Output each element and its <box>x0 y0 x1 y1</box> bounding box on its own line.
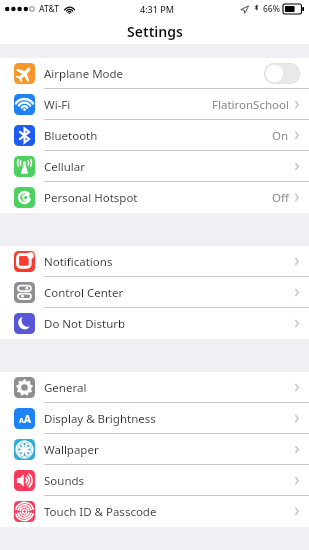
staticText: Notifications <box>44 254 113 270</box>
staticText: Settings <box>127 22 183 41</box>
staticText: AT&T <box>39 3 60 15</box>
staticText: On <box>272 128 289 144</box>
button[interactable]: Do Not Disturb <box>0 308 309 339</box>
staticText: Control Center <box>44 285 124 301</box>
staticText: Personal Hotspot <box>44 190 138 206</box>
staticText: Wi-Fi <box>44 97 71 113</box>
button[interactable]: Airplane Mode toggle <box>264 63 300 84</box>
staticText: Bluetooth <box>44 128 98 144</box>
staticText: 66% <box>263 3 280 15</box>
staticText: 4:31 PM <box>140 3 174 15</box>
staticText: Airplane Mode <box>44 66 124 82</box>
staticText: Off <box>272 190 289 206</box>
staticText: General <box>44 380 87 396</box>
button[interactable]: Bluetooth <box>0 120 309 151</box>
staticText: Wallpaper <box>44 442 99 458</box>
staticText: Do Not Disturb <box>44 316 126 332</box>
button[interactable]: Cellular <box>0 151 309 182</box>
button[interactable]: Personal Hotspot <box>0 182 309 213</box>
staticText: Cellular <box>44 159 85 175</box>
staticText: FlatironSchool <box>212 97 289 113</box>
staticText: A <box>19 416 24 426</box>
button[interactable]: Control Center <box>0 277 309 308</box>
staticText: A <box>24 412 31 426</box>
button[interactable]: A <box>0 403 309 434</box>
button[interactable]: Sounds <box>0 465 309 496</box>
button[interactable]: Airplane Mode <box>0 58 309 89</box>
button[interactable]: Wallpaper <box>0 434 309 465</box>
staticText: Sounds <box>44 473 85 489</box>
staticText: Touch ID & Passcode <box>44 504 157 520</box>
button[interactable]: Touch ID & Passcode <box>0 496 309 527</box>
button[interactable]: Notifications <box>0 246 309 277</box>
button[interactable]: Wi-Fi <box>0 89 309 120</box>
button[interactable]: General <box>0 372 309 403</box>
staticText: Display & Brightness <box>44 411 156 427</box>
